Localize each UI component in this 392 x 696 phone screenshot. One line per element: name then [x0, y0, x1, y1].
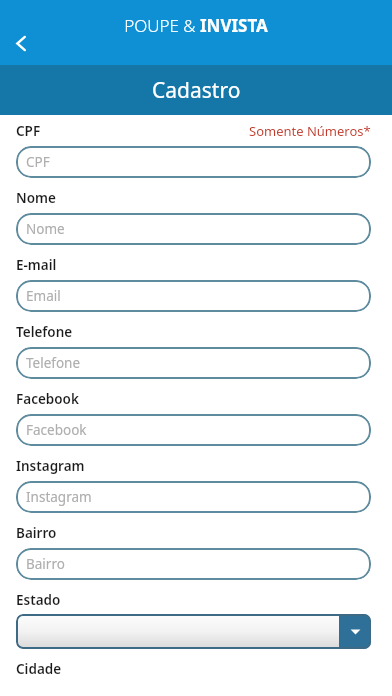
staticText: Instagram [26, 488, 92, 506]
button[interactable]: Bairro [16, 548, 371, 580]
staticText: POUPE & INVISTA [124, 14, 268, 37]
staticText: Telefone [16, 323, 73, 341]
staticText: Facebook [26, 421, 87, 439]
staticText: Instagram [16, 457, 85, 475]
button[interactable]: Instagram [16, 481, 371, 513]
staticText: Estado [16, 591, 61, 609]
staticText: CPF [26, 153, 50, 171]
staticText: Cidade [16, 660, 62, 678]
button[interactable]: Email [16, 280, 371, 312]
button[interactable]: Nome [16, 213, 371, 245]
staticText: CPF [16, 122, 41, 140]
staticText: Cadastro [152, 76, 241, 105]
staticText: Somente Números* [249, 122, 371, 140]
staticText: Nome [26, 220, 65, 238]
button[interactable]: CPF [16, 146, 371, 178]
button[interactable]: Telefone [16, 347, 371, 379]
staticText: Facebook [16, 390, 79, 408]
staticText: Telefone [26, 354, 81, 372]
button[interactable]: Voltar [4, 26, 38, 60]
staticText: E-mail [16, 256, 57, 274]
staticText: Email [26, 287, 61, 305]
button[interactable]: Selecionar Estado [16, 614, 371, 649]
staticText: Nome [16, 189, 56, 207]
staticText: Bairro [26, 555, 65, 573]
staticText: Bairro [16, 524, 57, 542]
button[interactable]: Facebook [16, 414, 371, 446]
